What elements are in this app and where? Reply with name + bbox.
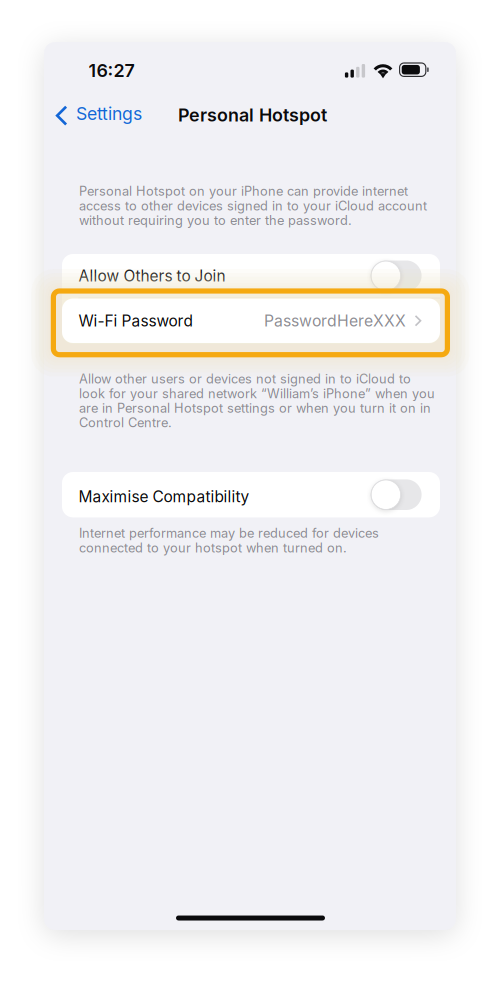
staticText: PasswordHereXXX [264, 311, 406, 330]
button[interactable]: Wi-Fi Password [62, 298, 440, 343]
staticText: are in Personal Hotspot settings or when… [79, 400, 431, 416]
staticText: Personal Hotspot [178, 104, 327, 126]
button[interactable]: Allow Others to Join [62, 254, 440, 298]
staticText: Settings [76, 103, 142, 124]
staticText: without requiring you to enter the passw… [79, 213, 352, 228]
staticText: Personal Hotspot on your iPhone can prov… [79, 183, 408, 199]
staticText: Control Centre. [79, 415, 172, 430]
staticText: access to other devices signed in to you… [79, 198, 427, 213]
staticText: Allow other users or devices not signed … [79, 371, 411, 387]
button[interactable]: Maximise Compatibility [62, 472, 440, 517]
staticText: connected to your hotspot when turned on… [79, 540, 347, 555]
staticText: Maximise Compatibility [79, 487, 250, 506]
staticText: 16:27 [89, 60, 135, 81]
staticText: Allow Others to Join [79, 266, 226, 285]
button[interactable]: Settings [54, 102, 140, 126]
staticText: Wi-Fi Password [79, 311, 193, 330]
staticText: look for your shared network “William’s … [79, 386, 435, 401]
staticText: Internet performance may be reduced for … [79, 525, 379, 541]
